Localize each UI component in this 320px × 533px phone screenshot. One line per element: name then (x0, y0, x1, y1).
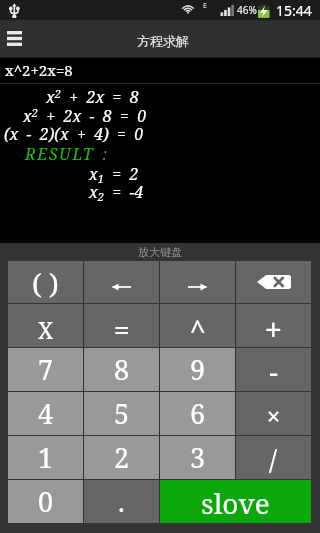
button[interactable]: 6 (160, 392, 235, 435)
staticText: slove (201, 484, 270, 522)
button[interactable]: 5 (84, 392, 159, 435)
staticText: 9 (190, 351, 206, 388)
button[interactable]: 1 (8, 436, 83, 479)
staticText: 0 (38, 483, 54, 520)
button[interactable]: = (84, 304, 159, 347)
staticText: ( ) (32, 264, 59, 302)
staticText: E (203, 1, 207, 11)
staticText: 15:44 (276, 1, 312, 19)
staticText: x2 + 2x = 8 (46, 86, 139, 108)
staticText: x2 + 2x − 8 = 0 (23, 105, 147, 127)
button[interactable]: - (236, 348, 311, 391)
other: Move right (160, 261, 235, 303)
button[interactable]: 9 (160, 348, 235, 391)
button[interactable]: Move left (84, 261, 159, 303)
staticText: 7 (38, 351, 54, 388)
button[interactable]: 7 (8, 348, 83, 391)
button[interactable]: × (236, 392, 311, 435)
staticText: X (38, 314, 54, 345)
staticText: + (265, 309, 282, 348)
button[interactable]: x^2+2x=8 (5, 60, 73, 80)
button[interactable]: 2 (84, 436, 159, 479)
button[interactable]: + (236, 304, 311, 347)
staticText: × (267, 400, 281, 431)
other: Move left (84, 261, 159, 303)
button[interactable]: slove (160, 480, 311, 523)
staticText: 5 (114, 395, 130, 432)
staticText: RESULT : (25, 143, 108, 165)
staticText: - (269, 352, 279, 391)
button[interactable]: 4 (8, 392, 83, 435)
button[interactable]: X (8, 304, 83, 347)
staticText: (x − 2)(x + 4) = 0 (4, 123, 144, 145)
staticText: 8 (114, 351, 130, 388)
staticText: 4 (38, 395, 54, 432)
staticText: = (114, 311, 130, 348)
button[interactable]: 0 (8, 480, 83, 523)
other: Backspace (236, 261, 311, 303)
staticText: ^ (190, 311, 206, 348)
staticText: 46% (237, 3, 257, 17)
staticText: / (269, 440, 278, 478)
staticText: x1 = 2 (89, 163, 139, 186)
button[interactable]: Move right (160, 261, 235, 303)
staticText: 方程求解 (137, 33, 189, 49)
staticText: 6 (190, 395, 206, 432)
button[interactable]: / (236, 436, 311, 479)
staticText: 3 (190, 439, 206, 476)
staticText: x2 = −4 (89, 181, 144, 204)
button[interactable]: 3 (160, 436, 235, 479)
staticText: . (118, 483, 125, 520)
button[interactable]: 8 (84, 348, 159, 391)
button[interactable]: . (84, 480, 159, 523)
button[interactable]: ( ) (8, 261, 83, 303)
button[interactable]: Menu (0, 18, 36, 58)
staticText: 1 (38, 439, 54, 476)
staticText: 2 (114, 439, 130, 476)
button[interactable]: Backspace (236, 261, 311, 303)
button[interactable]: ^ (160, 304, 235, 347)
button[interactable]: 放大键盘 (138, 245, 182, 259)
